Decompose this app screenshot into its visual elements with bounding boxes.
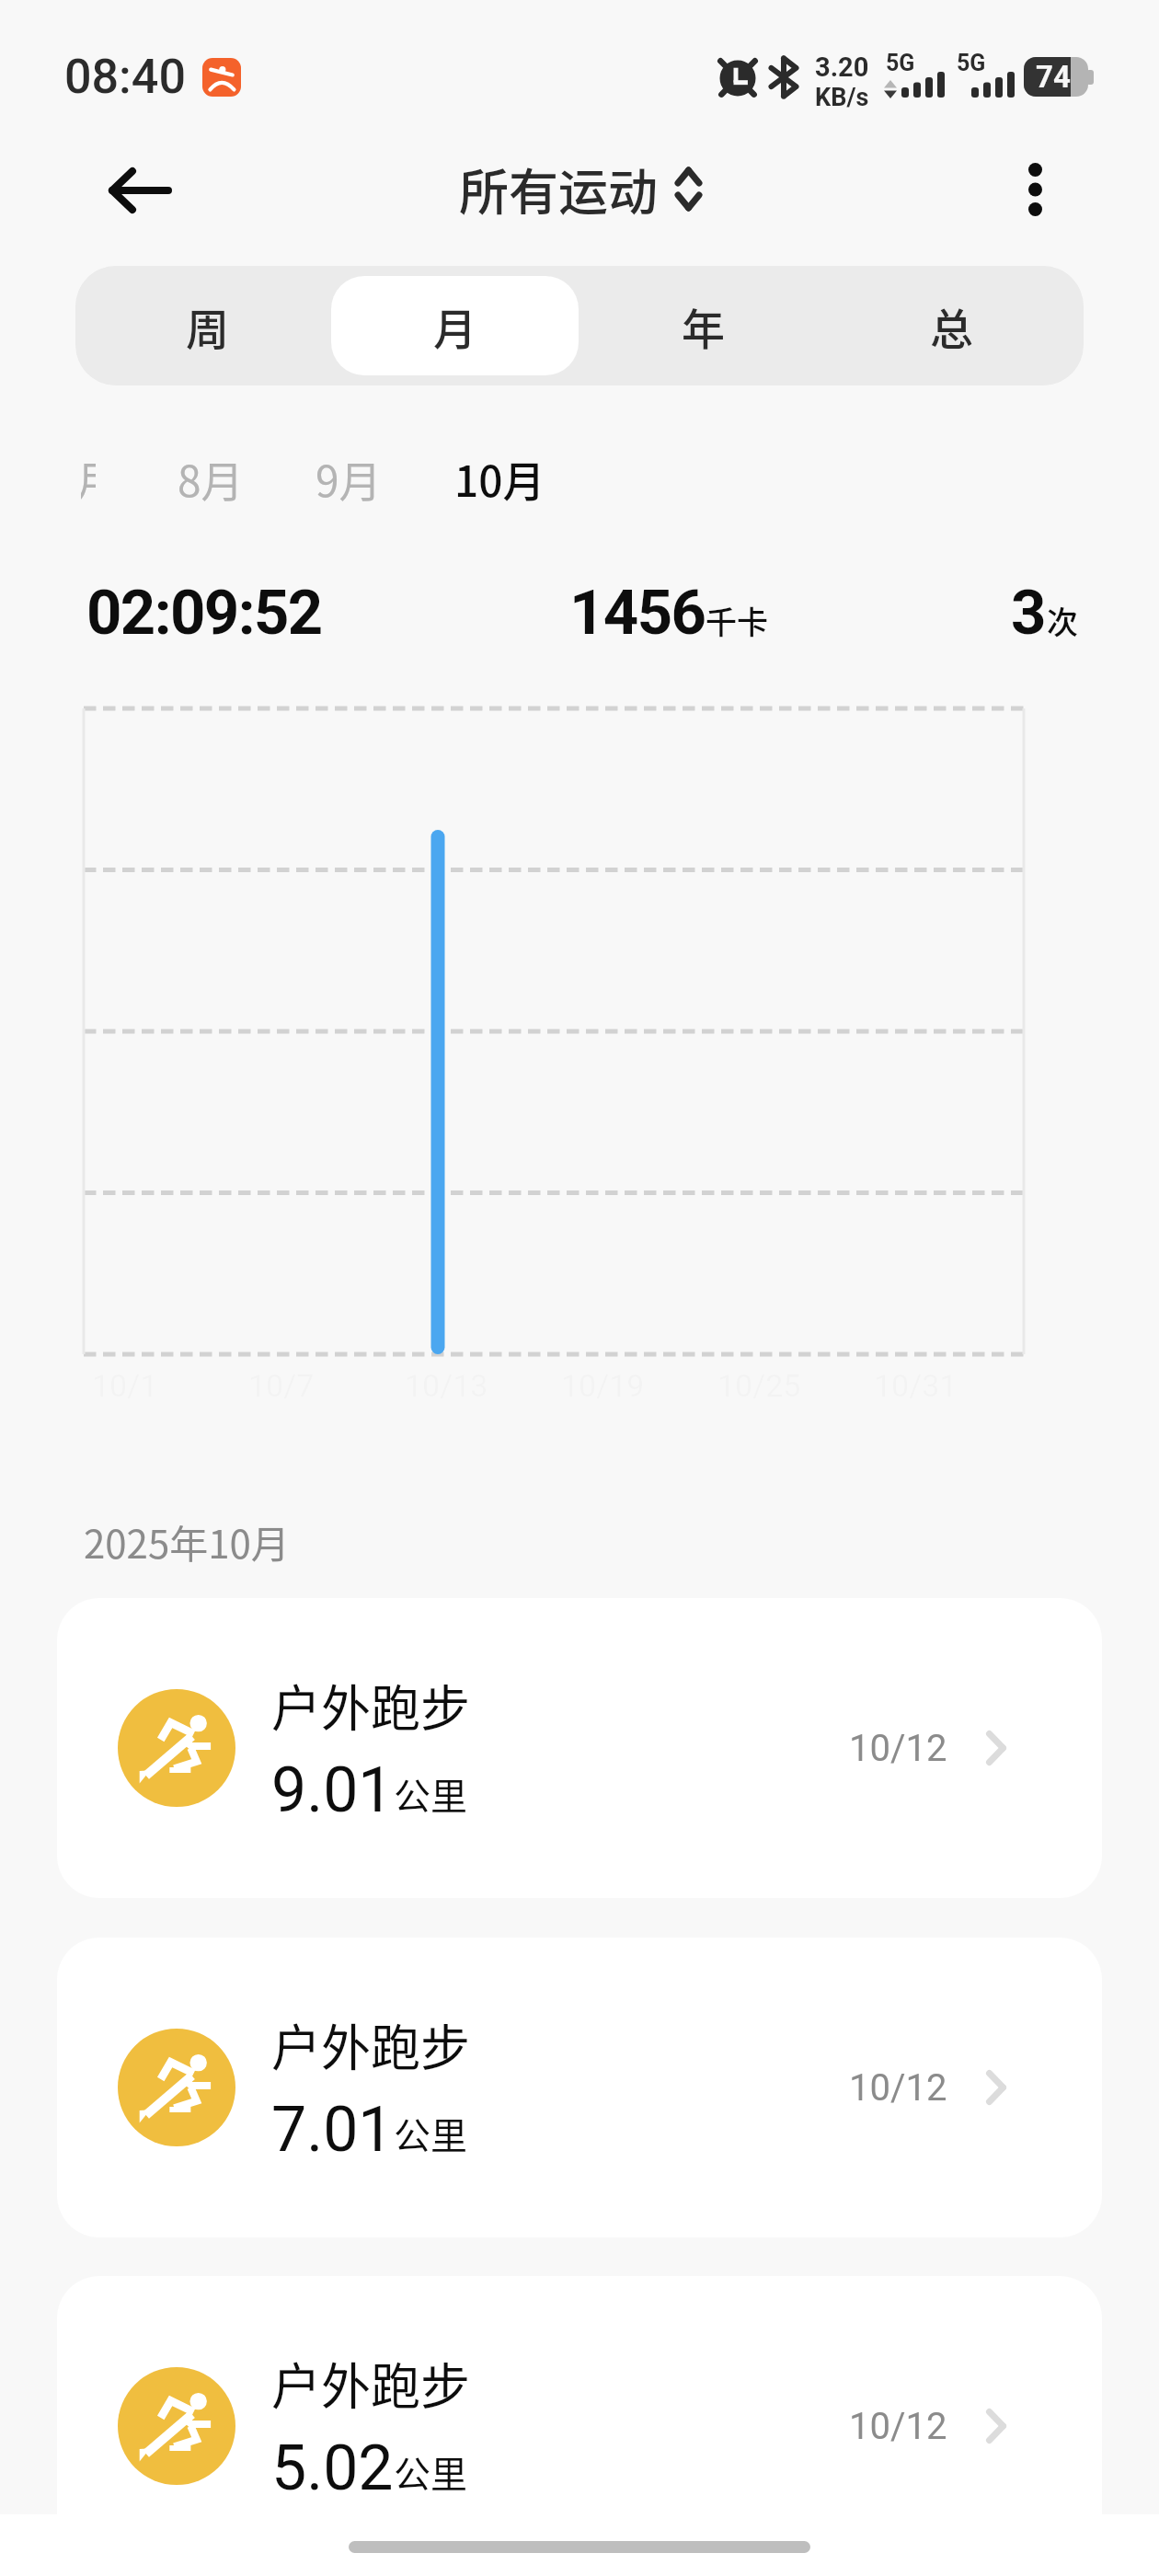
staticText: 08:40 bbox=[64, 49, 186, 105]
staticText: 年 bbox=[682, 294, 725, 357]
staticText: 户外跑步 bbox=[271, 1669, 470, 1741]
button[interactable]: 周 bbox=[84, 276, 331, 375]
staticText: 次 bbox=[1047, 598, 1078, 643]
staticText: 千卡 bbox=[706, 598, 768, 643]
staticText: 周 bbox=[186, 294, 229, 357]
staticText: 5G bbox=[957, 50, 986, 76]
button[interactable]: 10月 bbox=[454, 448, 545, 510]
staticText: 10/12 bbox=[849, 2405, 947, 2448]
staticText: 3 bbox=[1011, 577, 1047, 650]
button[interactable]: Back bbox=[83, 133, 197, 247]
staticText: 1456 bbox=[569, 577, 706, 650]
button[interactable]: More options bbox=[985, 140, 1084, 239]
staticText: 7.01 bbox=[271, 2093, 394, 2167]
button[interactable]: 8月 bbox=[178, 448, 244, 510]
staticText: 5G bbox=[886, 50, 915, 76]
staticText: 月 bbox=[81, 448, 96, 507]
staticText: 9.01 bbox=[271, 1754, 394, 1827]
button[interactable]: 总 bbox=[827, 276, 1075, 375]
staticText: 月 bbox=[433, 294, 476, 357]
staticText: 公里 bbox=[394, 1767, 467, 1821]
staticText: 10/12 bbox=[849, 2066, 947, 2110]
button[interactable]: 所有运动 bbox=[459, 145, 702, 232]
staticText: 02:09:52 bbox=[86, 577, 322, 650]
staticText: KB/s bbox=[815, 83, 869, 112]
staticText: 所有运动 bbox=[459, 153, 658, 224]
staticText: 10/12 bbox=[849, 1727, 947, 1770]
staticText: 3.20 bbox=[815, 52, 869, 83]
button[interactable]: 户外跑步 bbox=[57, 1938, 1102, 2237]
button[interactable]: 户外跑步 bbox=[57, 2276, 1102, 2576]
staticText: 总 bbox=[930, 294, 973, 357]
button[interactable]: 月 bbox=[331, 276, 579, 375]
staticText: 户外跑步 bbox=[271, 2008, 470, 2080]
button[interactable]: 户外跑步 bbox=[57, 1598, 1102, 1898]
button[interactable]: 9月 bbox=[316, 448, 382, 510]
staticText: 2025年10月 bbox=[84, 1513, 290, 1570]
staticText: 5.02 bbox=[271, 2432, 394, 2505]
staticText: 户外跑步 bbox=[271, 2347, 470, 2419]
staticText: 74 bbox=[1036, 59, 1071, 95]
staticText: 公里 bbox=[394, 2107, 467, 2160]
staticText: 公里 bbox=[394, 2445, 467, 2499]
button[interactable]: 年 bbox=[579, 276, 827, 375]
